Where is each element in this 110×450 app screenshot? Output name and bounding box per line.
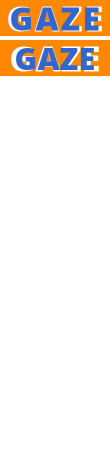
staticText: GAZE (9, 35, 100, 81)
staticText: GAZE (6, 0, 103, 41)
